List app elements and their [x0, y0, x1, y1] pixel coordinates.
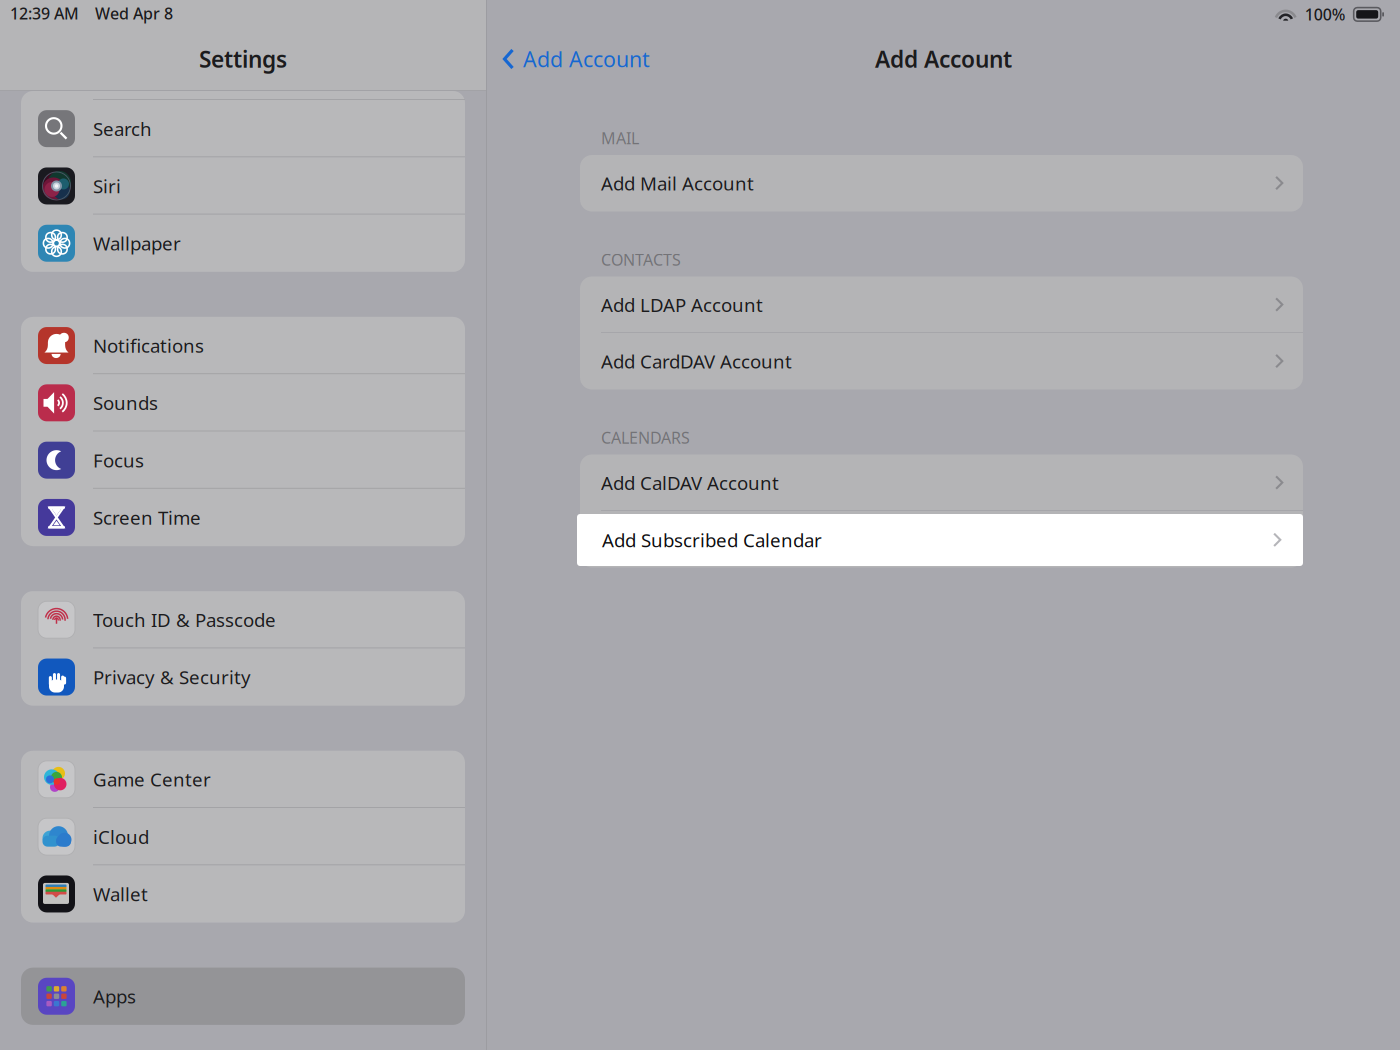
staticText: CALENDARS	[601, 427, 690, 448]
staticText: Settings	[199, 44, 287, 74]
staticText: Add Mail Account	[601, 171, 754, 196]
button[interactable]: Add Account	[487, 35, 650, 83]
staticText: Game Center	[93, 767, 211, 792]
button[interactable]: Add CardDAV Account	[580, 333, 1303, 389]
button[interactable]: Add Subscribed Calendar	[577, 514, 1303, 566]
staticText: Siri	[93, 174, 121, 198]
staticText: Add LDAP Account	[601, 292, 763, 317]
staticText: Wed Apr 8	[95, 3, 173, 24]
button[interactable]: Apps	[21, 968, 465, 1025]
staticText: Add Subscribed Calendar	[602, 528, 822, 552]
button[interactable]: Notifications	[21, 317, 465, 374]
staticText: Add Account	[875, 44, 1012, 74]
staticText: Add CalDAV Account	[601, 470, 779, 495]
staticText: MAIL	[601, 127, 639, 149]
staticText: Wallet	[93, 882, 148, 906]
staticText: Wallpaper	[93, 231, 181, 256]
button[interactable]: Search	[21, 100, 465, 157]
button[interactable]: iCloud	[21, 808, 465, 865]
staticText: Add CardDAV Account	[601, 349, 792, 374]
button[interactable]: Add Mail Account	[580, 155, 1303, 211]
button[interactable]: Touch ID & Passcode	[21, 591, 465, 648]
staticText: Sounds	[93, 390, 158, 415]
button[interactable]: Siri	[21, 157, 465, 215]
button[interactable]: Wallet	[21, 865, 465, 923]
staticText: Screen Time	[93, 505, 201, 530]
staticText: 100%	[1305, 4, 1346, 25]
button[interactable]: Wallpaper	[21, 215, 465, 272]
button[interactable]: Privacy & Security	[21, 648, 465, 706]
button[interactable]: Game Center	[21, 751, 465, 808]
button[interactable]: Add CalDAV Account	[580, 454, 1303, 511]
staticText: Notifications	[93, 333, 204, 358]
staticText: CONTACTS	[601, 249, 681, 270]
button[interactable]: Add Subscribed Calendar	[580, 511, 1303, 567]
staticText: Privacy & Security	[93, 665, 251, 689]
button[interactable]: Sounds	[21, 374, 465, 431]
button[interactable]: Focus	[21, 431, 465, 489]
staticText: Focus	[93, 448, 144, 473]
button[interactable]: Screen Time	[21, 489, 465, 546]
staticText: Add Account	[523, 45, 650, 73]
staticText: Apps	[93, 984, 136, 1009]
button[interactable]: Add LDAP Account	[580, 276, 1303, 333]
staticText: Touch ID & Passcode	[93, 607, 276, 632]
staticText: Search	[93, 116, 152, 141]
staticText: iCloud	[93, 824, 149, 849]
staticText: Add Subscribed Calendar	[601, 527, 821, 552]
staticText: 12:39 AM	[10, 3, 79, 24]
